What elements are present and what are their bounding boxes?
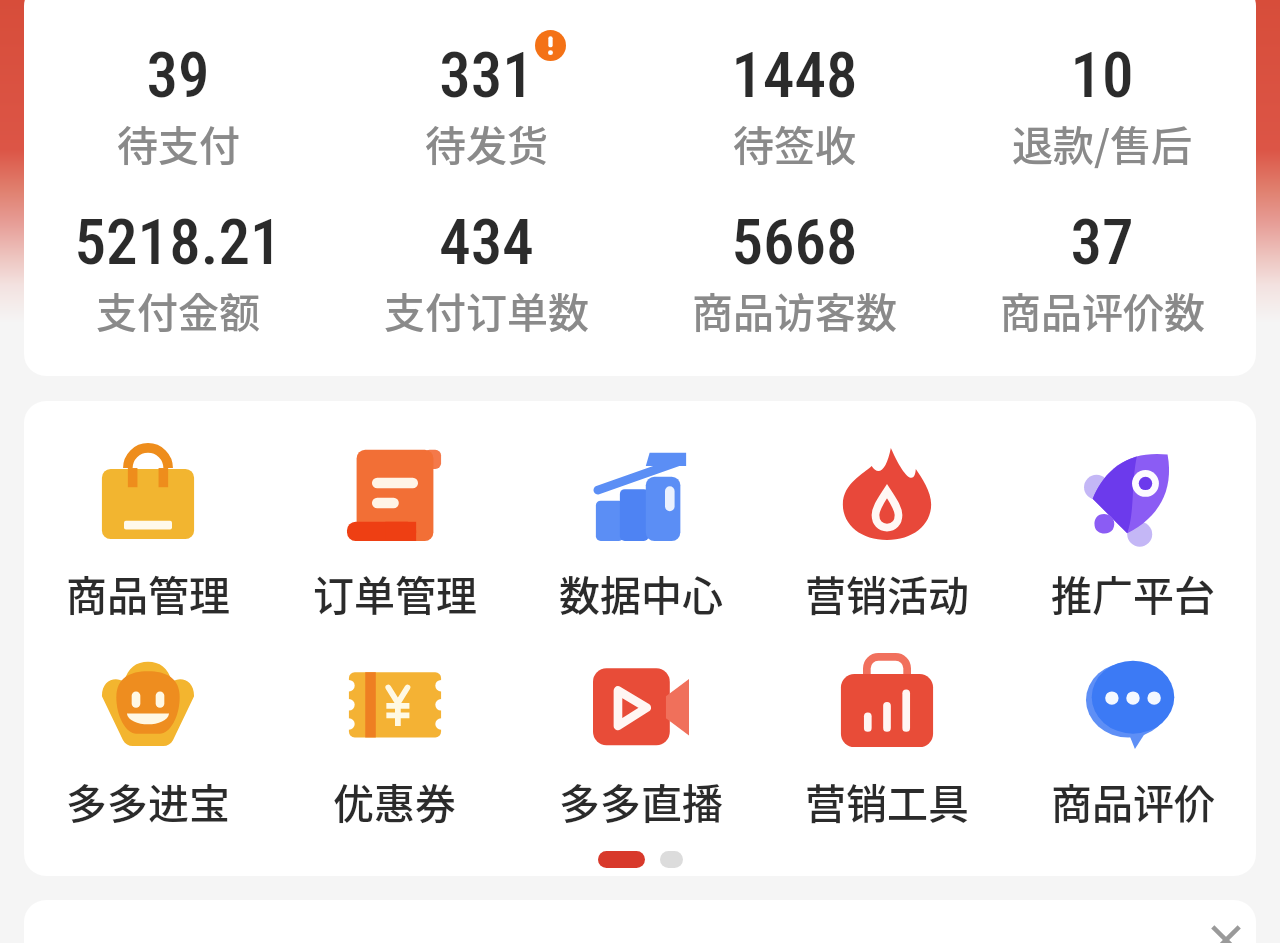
staticText: 商品评价数 bbox=[1000, 280, 1205, 339]
button[interactable]: 商品评价 bbox=[1010, 653, 1256, 833]
button[interactable]: 优惠券 bbox=[271, 653, 518, 833]
staticText: 多多进宝 bbox=[66, 771, 230, 830]
button[interactable]: 第 1 页 bbox=[598, 851, 645, 868]
button[interactable]: 434 bbox=[332, 206, 640, 339]
staticText: 5218.21 bbox=[74, 206, 282, 280]
button[interactable]: 推广平台 bbox=[1010, 445, 1256, 625]
button[interactable]: 营销活动 bbox=[764, 445, 1010, 625]
staticText: 订单管理 bbox=[313, 563, 477, 622]
staticText: 5668 bbox=[731, 206, 858, 280]
staticText: 营销工具 bbox=[805, 771, 969, 830]
button[interactable]: 1448 bbox=[640, 39, 948, 172]
staticText: 营销活动 bbox=[805, 563, 969, 622]
staticText: 1448 bbox=[731, 39, 858, 113]
button[interactable]: 10 bbox=[948, 39, 1256, 172]
staticText: 支付金额 bbox=[96, 280, 260, 339]
staticText: 支付订单数 bbox=[384, 280, 589, 339]
staticText: 退款/售后 bbox=[1012, 113, 1192, 172]
button[interactable]: 营销工具 bbox=[764, 653, 1010, 833]
button[interactable]: 多多进宝 bbox=[24, 653, 271, 833]
staticText: 商品访客数 bbox=[692, 280, 897, 339]
staticText: 331 bbox=[439, 39, 534, 113]
staticText: 多多直播 bbox=[559, 771, 723, 830]
button[interactable]: 5668 bbox=[640, 206, 948, 339]
button[interactable]: 39 bbox=[24, 39, 332, 172]
staticText: 商品管理 bbox=[66, 563, 230, 622]
staticText: 推广平台 bbox=[1051, 563, 1215, 622]
button[interactable]: 37 bbox=[948, 206, 1256, 339]
button[interactable]: 关闭 bbox=[1204, 918, 1248, 943]
button[interactable]: 331 bbox=[332, 39, 640, 172]
staticText: 待发货 bbox=[425, 113, 548, 172]
button[interactable]: 商品管理 bbox=[24, 445, 271, 625]
staticText: 数据中心 bbox=[559, 563, 723, 622]
staticText: 434 bbox=[439, 206, 534, 280]
button[interactable]: 多多直播 bbox=[518, 653, 764, 833]
staticText: 10 bbox=[1070, 39, 1134, 113]
staticText: 37 bbox=[1070, 206, 1134, 280]
staticText: 39 bbox=[146, 39, 210, 113]
staticText: 优惠券 bbox=[333, 771, 456, 830]
button[interactable]: 数据中心 bbox=[518, 445, 764, 625]
staticText: 待签收 bbox=[733, 113, 856, 172]
button[interactable]: 第 2 页 bbox=[660, 851, 683, 868]
staticText: 商品评价 bbox=[1051, 771, 1215, 830]
staticText: 待支付 bbox=[117, 113, 240, 172]
button[interactable]: 5218.21 bbox=[24, 206, 332, 339]
button[interactable]: 订单管理 bbox=[271, 445, 518, 625]
